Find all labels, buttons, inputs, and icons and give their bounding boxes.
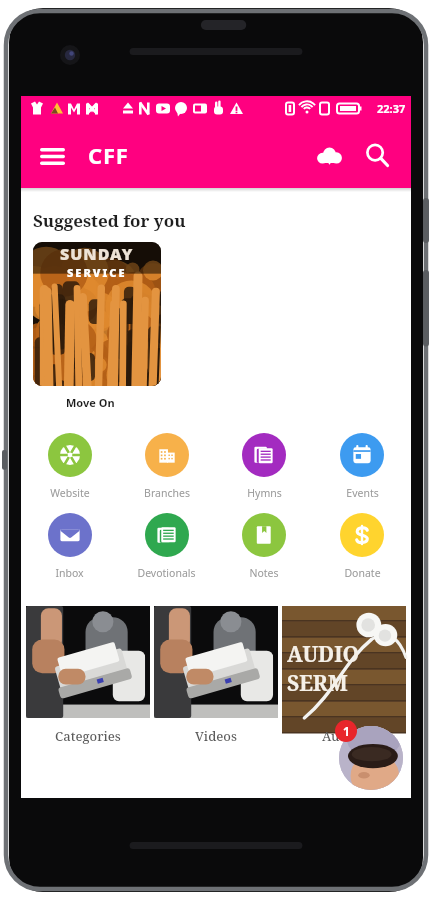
button[interactable]: Download: [305, 131, 353, 179]
staticText: Branches: [144, 486, 190, 500]
button[interactable]: Categories: [26, 606, 150, 745]
button[interactable]: Inbox: [21, 513, 118, 580]
staticText: Audios: [322, 727, 366, 745]
staticText: 22:37: [377, 101, 406, 116]
staticText: Donate: [344, 566, 381, 580]
button[interactable]: Open chat, 1 unread message: [331, 718, 403, 790]
button[interactable]: Videos: [154, 606, 278, 745]
staticText: Events: [346, 486, 379, 500]
button[interactable]: AUDIO: [282, 606, 406, 745]
button[interactable]: SUNDAY: [33, 242, 161, 410]
button[interactable]: Events: [313, 433, 411, 500]
button[interactable]: Search: [353, 131, 401, 179]
staticText: Notes: [249, 566, 279, 580]
staticText: CFF: [88, 140, 129, 170]
button[interactable]: Open navigation menu: [29, 132, 75, 178]
staticText: Devotionals: [137, 566, 196, 580]
button[interactable]: Notes: [215, 513, 313, 580]
staticText: 1: [343, 723, 350, 739]
button[interactable]: Website: [21, 433, 118, 500]
button[interactable]: Donate: [313, 513, 411, 580]
button[interactable]: Devotionals: [118, 513, 215, 580]
button[interactable]: Branches: [118, 433, 215, 500]
staticText: AUDIO: [287, 640, 360, 669]
staticText: Suggested for you: [33, 209, 186, 232]
staticText: SUNDAY: [60, 243, 134, 265]
staticText: Move On: [66, 395, 115, 410]
staticText: Categories: [55, 727, 121, 745]
staticText: Videos: [195, 727, 237, 745]
staticText: Inbox: [55, 566, 84, 580]
staticText: Website: [50, 486, 90, 500]
button[interactable]: Hymns: [215, 433, 313, 500]
staticText: SERM: [287, 669, 348, 698]
staticText: Hymns: [247, 486, 282, 500]
staticText: SERVICE: [67, 265, 127, 280]
